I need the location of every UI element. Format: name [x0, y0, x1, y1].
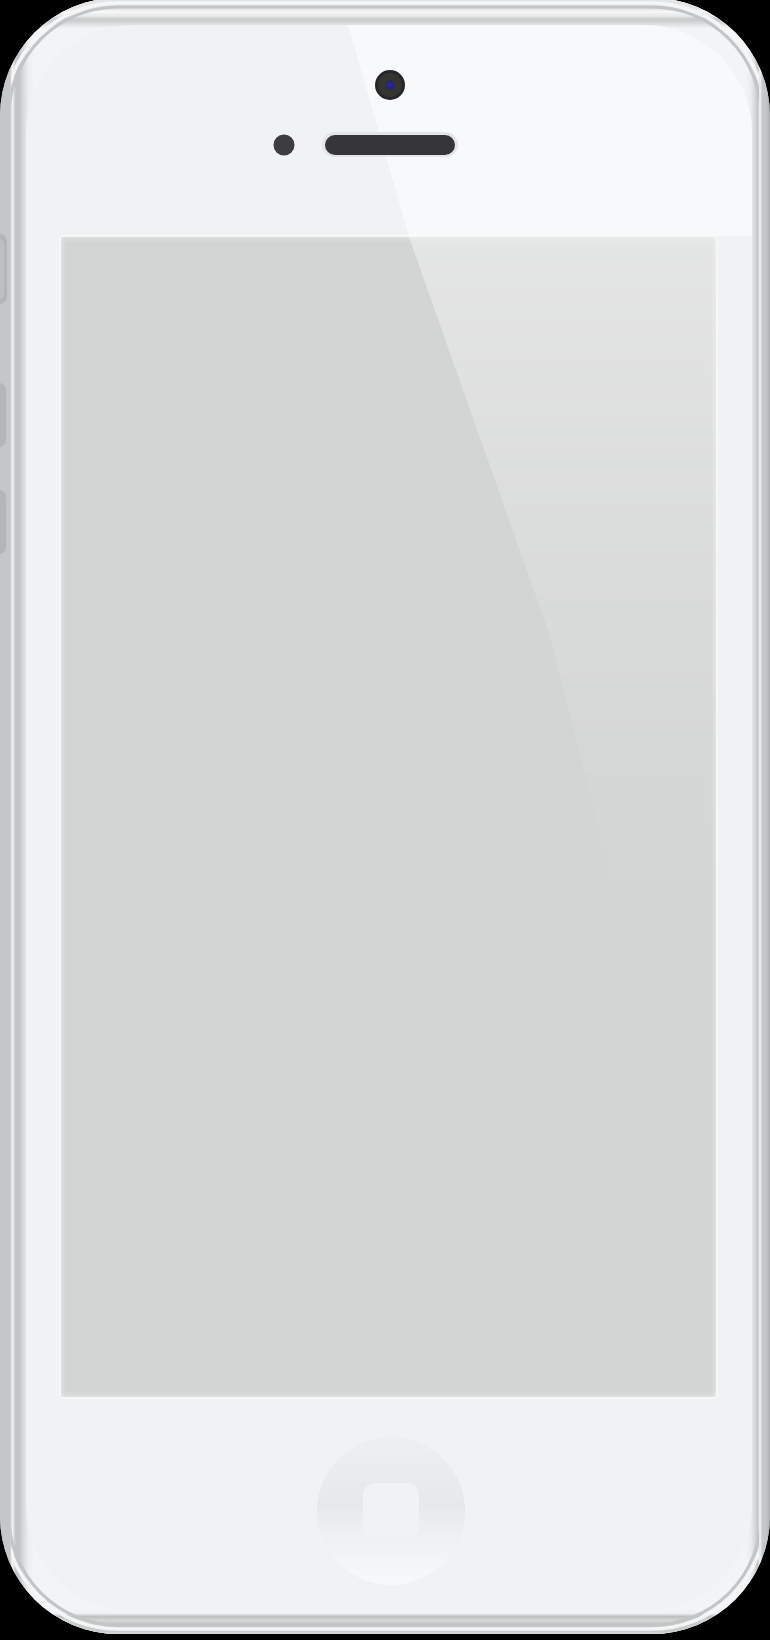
- button[interactable]: Ring silent switch: [0, 234, 9, 304]
- button[interactable]: Home button: [317, 1437, 465, 1585]
- button[interactable]: Volume up: [0, 383, 9, 447]
- button[interactable]: Volume down: [0, 490, 9, 554]
- button[interactable]: Device screen: [61, 237, 716, 1397]
